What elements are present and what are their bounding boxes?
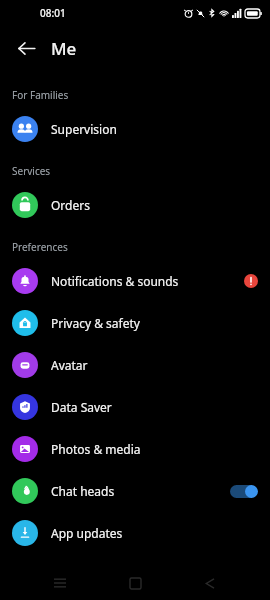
staticText: Orders bbox=[51, 197, 90, 213]
staticText: App updates bbox=[51, 525, 123, 541]
staticText: Notifications & sounds bbox=[51, 273, 179, 289]
button[interactable]: Chat heads bbox=[0, 470, 270, 512]
staticText: Privacy & safety bbox=[51, 315, 140, 331]
staticText: Services bbox=[12, 164, 51, 178]
staticText: Avatar bbox=[51, 357, 88, 373]
button[interactable]: Home bbox=[120, 568, 150, 598]
staticText: Supervision bbox=[51, 121, 117, 137]
button[interactable]: Privacy & safety bbox=[0, 302, 270, 344]
button[interactable]: Chat heads toggle bbox=[230, 485, 258, 498]
staticText: For Families bbox=[12, 88, 69, 102]
staticText: Chat heads bbox=[51, 483, 115, 499]
staticText: Me bbox=[51, 37, 77, 60]
button[interactable]: Photos & media bbox=[0, 428, 270, 470]
staticText: Photos & media bbox=[51, 441, 141, 457]
staticText: 08:01 bbox=[40, 6, 66, 20]
button[interactable]: Recents bbox=[45, 568, 75, 598]
button[interactable]: Supervision bbox=[0, 108, 270, 150]
button[interactable]: Avatar bbox=[0, 344, 270, 386]
button[interactable]: App updates bbox=[0, 512, 270, 554]
button[interactable]: Orders bbox=[0, 184, 270, 226]
button[interactable]: Notifications & sounds bbox=[0, 260, 270, 302]
button[interactable]: Data Saver bbox=[0, 386, 270, 428]
button[interactable]: Back bbox=[8, 30, 44, 66]
staticText: Preferences bbox=[12, 240, 68, 254]
staticText: Data Saver bbox=[51, 399, 112, 415]
button[interactable]: Back bbox=[195, 568, 225, 598]
